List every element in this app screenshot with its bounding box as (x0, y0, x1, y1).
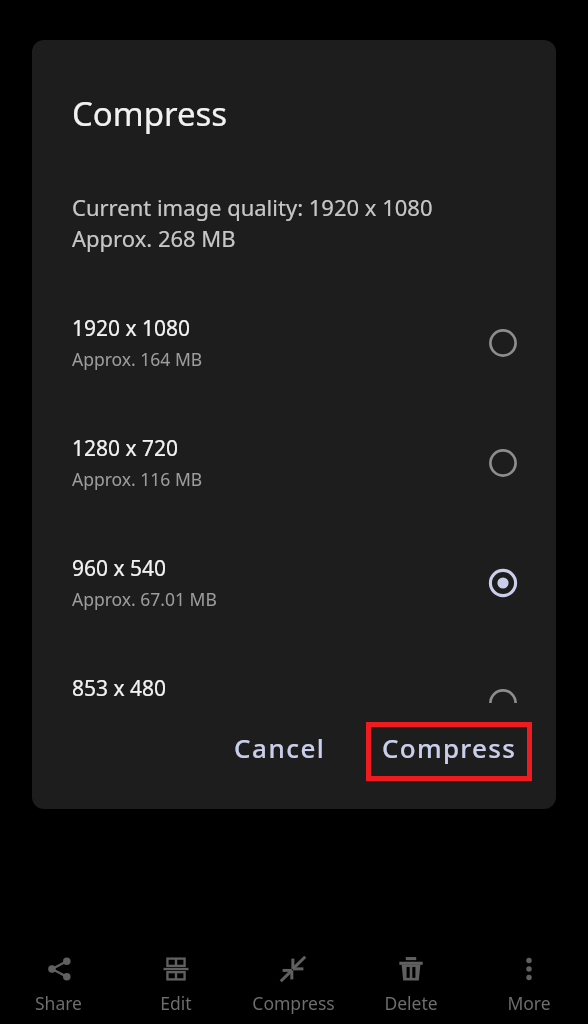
other: More options (516, 956, 542, 982)
other: Delete (398, 956, 424, 982)
staticText: 960 x 540 (72, 554, 167, 583)
other: Share (46, 956, 72, 982)
staticText: Compress (382, 730, 517, 765)
button[interactable]: More options (470, 928, 588, 1024)
staticText: 1280 x 720 (72, 434, 179, 463)
staticText: Cancel (234, 730, 326, 765)
staticText: Current image quality: 1920 x 1080 Appro… (72, 192, 433, 254)
staticText: 1920 x 1080 (72, 314, 191, 343)
staticText: More (507, 991, 551, 1015)
button[interactable]: Cancel (220, 720, 340, 775)
staticText: Delete (384, 991, 438, 1015)
button[interactable]: Share (0, 928, 117, 1024)
staticText: Share (35, 991, 82, 1015)
staticText: Approx. 67.01 MB (72, 587, 217, 611)
button[interactable]: Delete (352, 928, 470, 1024)
other: Edit (163, 956, 189, 982)
button[interactable]: 1920 x 1080 (32, 300, 556, 420)
button[interactable]: Compress (234, 928, 352, 1024)
button[interactable]: Compress (368, 720, 531, 775)
staticText: 853 x 480 (72, 674, 167, 703)
staticText: Approx. 116 MB (72, 467, 203, 491)
button[interactable]: 853 x 480 (32, 660, 556, 703)
button[interactable]: 1280 x 720 (32, 420, 556, 540)
staticText: Edit (160, 991, 192, 1015)
button[interactable]: Edit (117, 928, 234, 1024)
staticText: Compress (252, 991, 335, 1015)
staticText: Approx. 164 MB (72, 347, 203, 371)
button[interactable]: 960 x 540 (32, 540, 556, 660)
staticText: Compress (72, 91, 228, 136)
other: Compress (280, 956, 306, 982)
